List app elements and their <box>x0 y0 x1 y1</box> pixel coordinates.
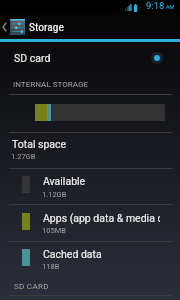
staticText: 1.12GB <box>42 190 67 199</box>
button[interactable] <box>0 204 180 238</box>
button[interactable] <box>0 130 180 164</box>
staticText: AM <box>166 4 175 10</box>
button[interactable]: SD card <box>0 42 180 74</box>
staticText: INTERNAL STORAGE <box>13 79 89 88</box>
staticText: Storage <box>29 20 64 33</box>
button[interactable]: Navigate up <box>0 14 9 39</box>
staticText: 118B <box>42 262 60 271</box>
staticText: 1.27GB <box>11 152 36 161</box>
staticText: Total space <box>12 138 67 150</box>
staticText: Cached data <box>43 248 160 260</box>
staticText: Available <box>43 175 160 187</box>
staticText: Apps (app data & media content) <box>43 212 160 224</box>
button[interactable] <box>0 240 180 274</box>
button[interactable] <box>0 168 180 202</box>
staticText: 105MB <box>42 226 66 235</box>
staticText: SD card <box>14 52 51 64</box>
staticText: 9:18 <box>146 0 165 11</box>
staticText: SD CARD <box>14 281 49 290</box>
